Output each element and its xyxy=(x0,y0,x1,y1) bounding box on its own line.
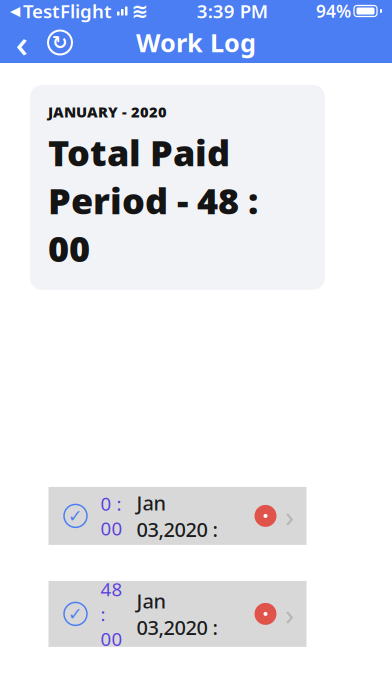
staticText: 94% xyxy=(316,0,351,22)
staticText: JANUARY - 2020 xyxy=(48,102,167,121)
button[interactable]: ✓ xyxy=(48,487,306,545)
staticText: ✓ xyxy=(68,506,83,526)
staticText: ✓ xyxy=(68,604,83,624)
button[interactable]: Refresh xyxy=(42,22,78,62)
staticText: ‹ xyxy=(15,17,28,68)
staticText: Work Log xyxy=(136,26,256,59)
staticText: ◀ xyxy=(10,3,20,18)
staticText: ≋ xyxy=(131,0,148,22)
staticText: › xyxy=(285,594,294,633)
staticText: 48 : 00 xyxy=(100,577,122,651)
button[interactable]: ✓ xyxy=(48,581,306,647)
staticText: › xyxy=(285,496,294,535)
staticText: TestFlight xyxy=(23,0,112,23)
staticText: ↻ xyxy=(52,32,68,53)
staticText: Jan 03,2020 : xyxy=(136,587,217,640)
staticText: 3:39 PM xyxy=(197,0,268,23)
button[interactable]: Back xyxy=(8,22,36,62)
staticText: Jan 03,2020 : xyxy=(136,489,217,542)
staticText: Total Paid Period - 48 : 00 xyxy=(48,128,258,272)
staticText: 0 : 00 xyxy=(100,491,122,541)
